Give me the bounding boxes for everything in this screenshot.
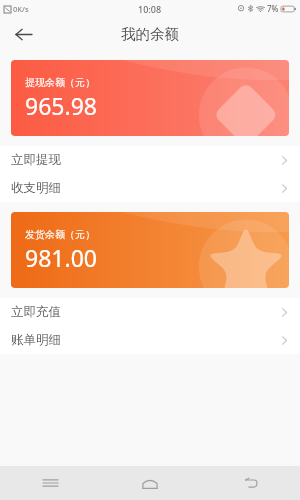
staticText: 965.98: [25, 90, 97, 121]
staticText: 账单明细: [11, 332, 61, 348]
staticText: 7%: [267, 3, 279, 14]
button[interactable]: 发货余额（元）: [11, 212, 289, 288]
button[interactable]: 收支明细: [0, 174, 300, 202]
button[interactable]: Back: [8, 19, 38, 49]
staticText: 发货余额（元）: [25, 228, 95, 241]
staticText: 立即提现: [11, 152, 61, 168]
button[interactable]: Recent apps: [0, 466, 100, 500]
staticText: 我的余额: [121, 25, 179, 43]
button[interactable]: 立即提现: [0, 146, 300, 174]
button[interactable]: 提现余额（元）: [11, 60, 289, 136]
staticText: 收支明细: [11, 180, 61, 196]
button[interactable]: Back: [200, 466, 300, 500]
button[interactable]: 账单明细: [0, 326, 300, 354]
staticText: 提现余额（元）: [25, 76, 95, 89]
staticText: 0K/s: [13, 4, 29, 14]
staticText: 10:08: [138, 3, 162, 15]
button[interactable]: 立即充值: [0, 298, 300, 326]
button[interactable]: Home: [100, 466, 200, 500]
staticText: 981.00: [25, 242, 97, 273]
staticText: 立即充值: [11, 304, 61, 320]
